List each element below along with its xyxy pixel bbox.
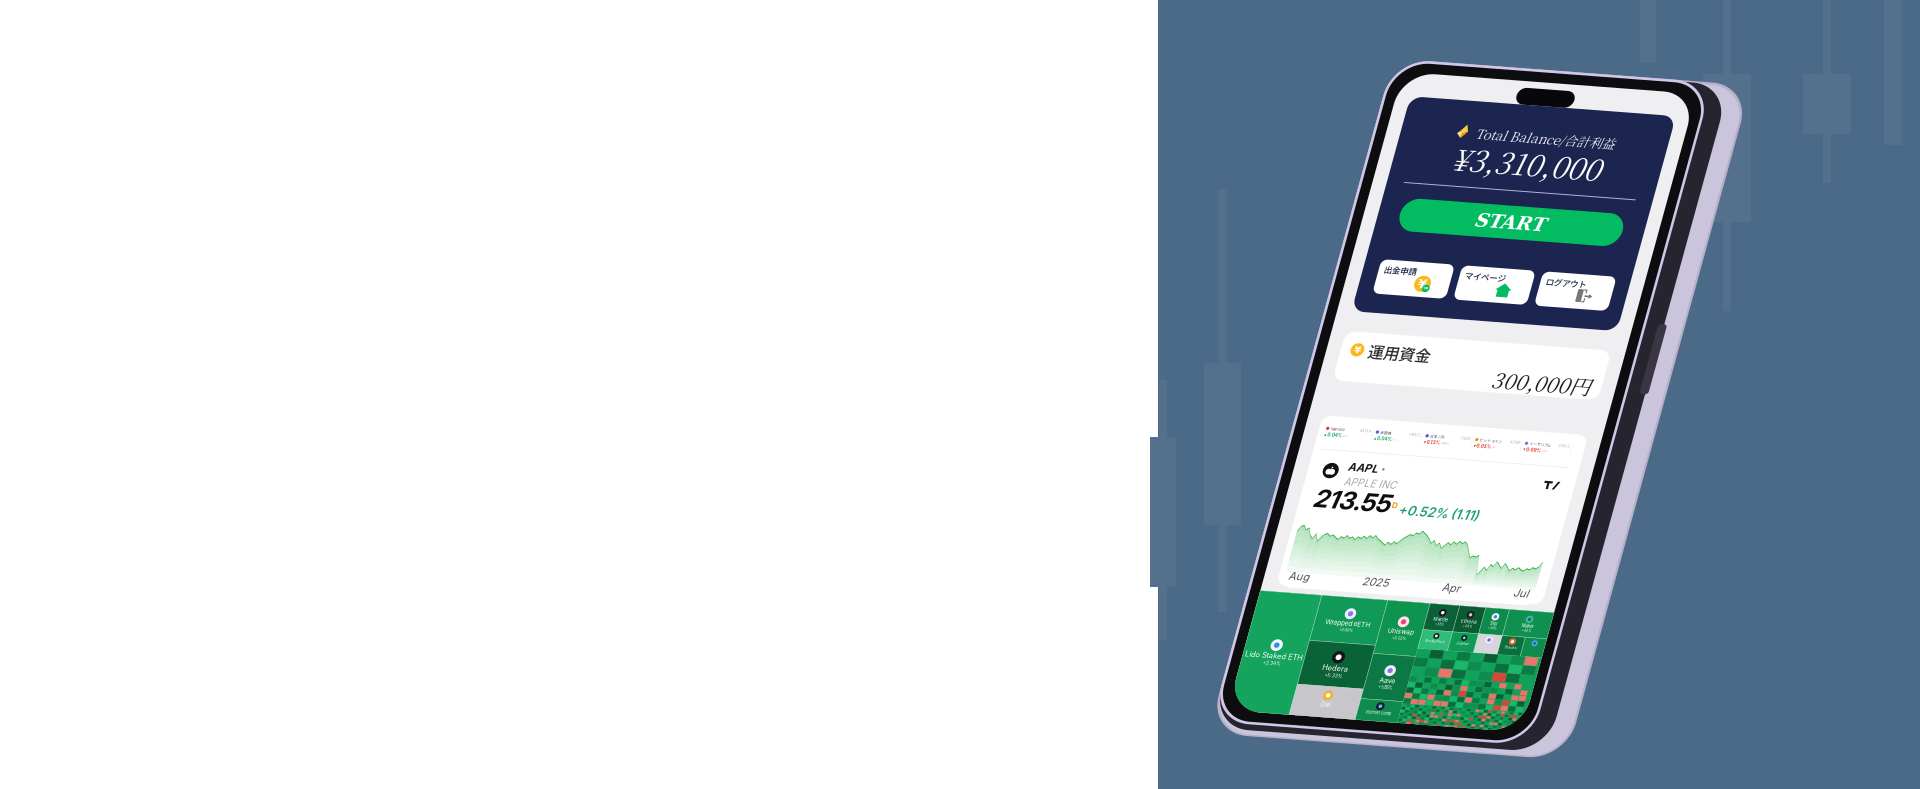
staticText: 6513.4 [1484,560,1499,565]
staticText: 出金申請 [1457,334,1501,351]
staticText: ▲ [1505,569,1508,573]
staticText: +0.52% (1.11) [1564,655,1672,676]
staticText: 0.04% [1509,567,1529,575]
staticText: マイページ [1566,334,1621,351]
staticText: 2.3 [1463,569,1468,573]
staticText: 213.55 [1449,637,1552,678]
button[interactable]: START [1458,244,1758,289]
staticText: 0.04% [1442,567,1462,575]
staticText: AAPL [1482,603,1522,621]
staticText: START [1561,252,1656,282]
staticText: APPLE INC [1482,624,1553,640]
staticText: 運用資金 [1466,438,1550,469]
staticText: ¥3,310,000 [1509,157,1708,214]
staticText: 0.13% [1576,567,1594,575]
staticText: ¥ [1447,446,1456,462]
staticText: 0.0017 [1595,569,1606,573]
staticText: S&P 500 [1445,559,1464,566]
button[interactable]: 出金申請 [1450,329,1549,376]
staticText: ログアウト [1675,334,1730,351]
button[interactable]: ログアウト [1668,329,1767,376]
staticText: 7.1 [1530,569,1535,573]
staticText: D [1553,653,1561,666]
button[interactable]: マイページ [1559,329,1658,376]
staticText: 日本 / 円 [1579,559,1598,566]
staticText: 17657.2 [1550,560,1566,565]
staticText: ▼ [1572,569,1575,573]
staticText: 300,000円 [1640,459,1773,500]
staticText: Total Balance/合計利益 [1530,138,1717,163]
staticText: 1.1834 [1619,560,1633,565]
